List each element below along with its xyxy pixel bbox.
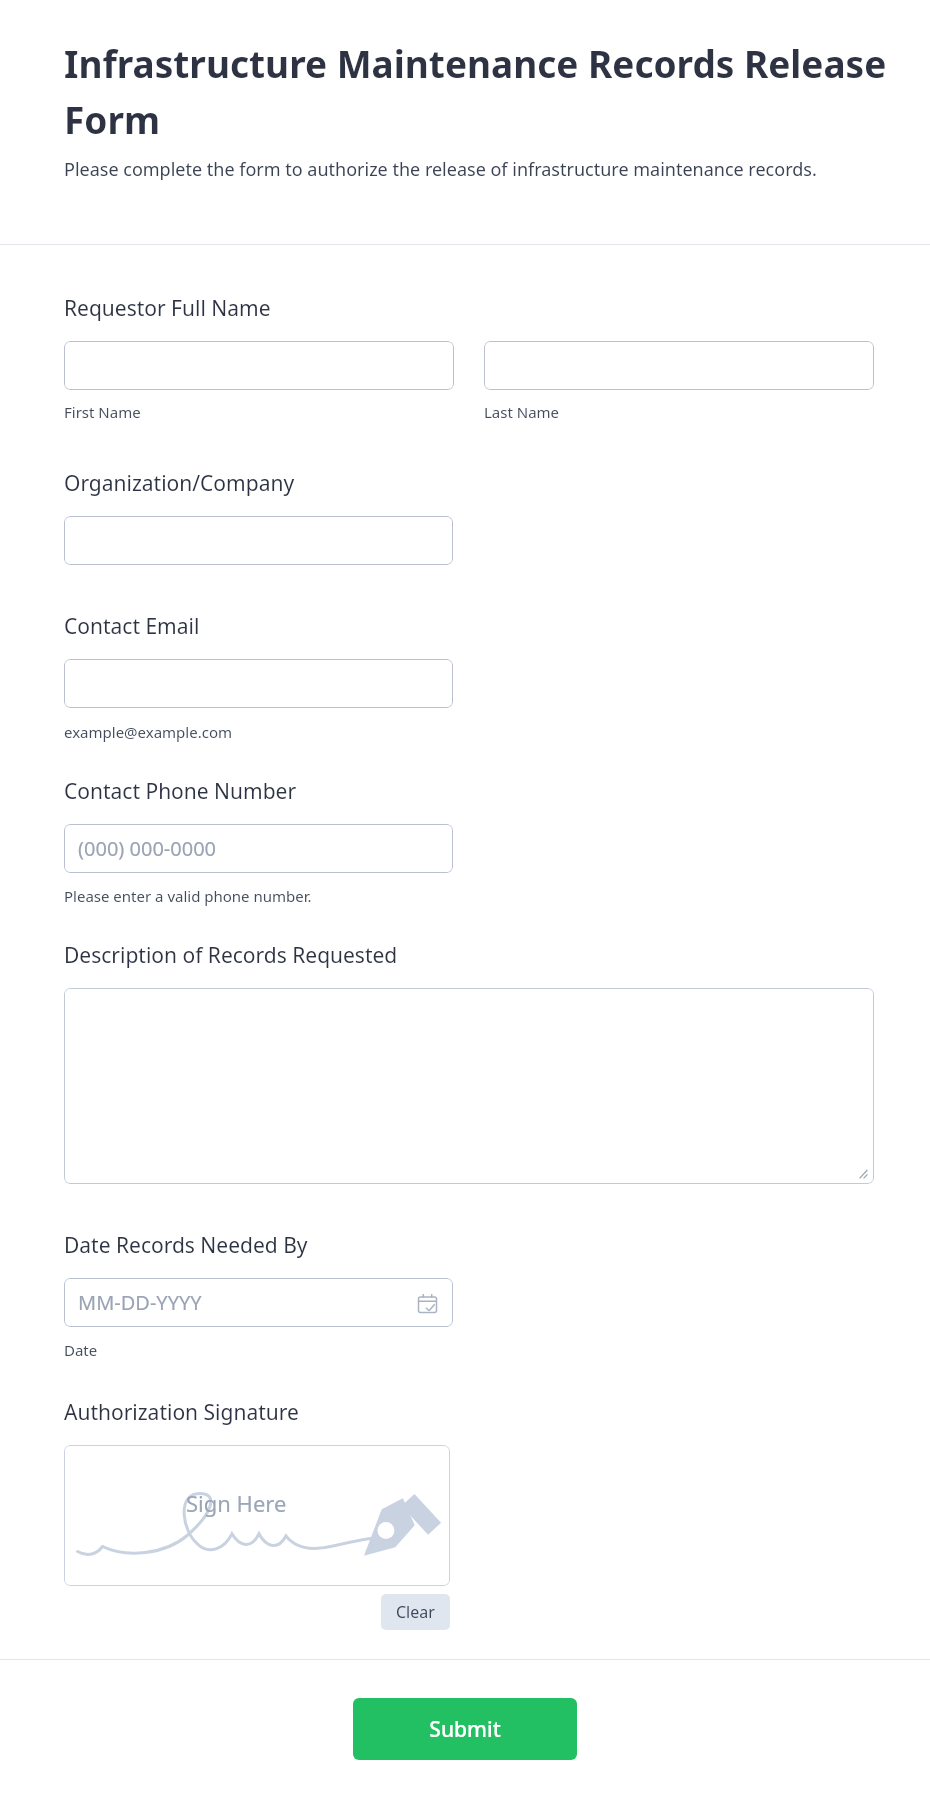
staticText: Date Records Needed By xyxy=(64,1231,308,1260)
staticText: MM-DD-YYYY xyxy=(78,1289,202,1316)
button[interactable] xyxy=(64,516,453,565)
other: Open calendar xyxy=(415,1291,439,1315)
button[interactable] xyxy=(64,341,454,390)
staticText: Submit xyxy=(429,1715,501,1744)
button[interactable] xyxy=(64,988,874,1184)
staticText: Authorization Signature xyxy=(64,1398,299,1427)
button[interactable]: Submit xyxy=(353,1698,577,1760)
staticText: Please complete the form to authorize th… xyxy=(64,157,854,182)
staticText: Please enter a valid phone number. xyxy=(64,886,312,906)
staticText: (000) 000-0000 xyxy=(78,835,217,862)
staticText: Organization/Company xyxy=(64,469,295,498)
button[interactable] xyxy=(64,659,453,708)
staticText: Infrastructure Maintenance Records Relea… xyxy=(64,38,890,145)
button[interactable]: Sign here xyxy=(64,1445,450,1586)
staticText: Clear xyxy=(396,1601,435,1623)
button[interactable]: MM-DD-YYYY xyxy=(64,1278,453,1327)
staticText: Contact Phone Number xyxy=(64,777,297,806)
staticText: First Name xyxy=(64,402,141,422)
button[interactable]: (000) 000-0000 xyxy=(64,824,453,873)
staticText: Date xyxy=(64,1340,98,1360)
button[interactable]: Clear xyxy=(381,1594,450,1630)
staticText: Requestor Full Name xyxy=(64,294,271,323)
staticText: Last Name xyxy=(484,402,560,422)
staticText: Sign Here xyxy=(186,1488,287,1518)
button[interactable] xyxy=(484,341,874,390)
staticText: Contact Email xyxy=(64,612,200,641)
staticText: example@example.com xyxy=(64,722,232,742)
staticText: Description of Records Requested xyxy=(64,941,398,970)
